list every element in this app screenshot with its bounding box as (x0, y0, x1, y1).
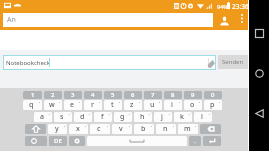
staticText: o (190, 100, 195, 110)
button[interactable]: u (144, 100, 162, 110)
staticText: y (55, 124, 59, 134)
staticText: d (80, 112, 85, 122)
staticText: m (184, 124, 191, 134)
button[interactable]: f (94, 112, 112, 122)
button[interactable]: o (184, 100, 202, 110)
button[interactable]: c (90, 124, 110, 134)
staticText: w (49, 100, 55, 110)
button[interactable]: s (54, 112, 72, 122)
button[interactable]: r (84, 100, 102, 110)
button[interactable]: Attach (207, 59, 215, 67)
button[interactable]: z (124, 100, 142, 110)
button[interactable]: Shift (25, 124, 46, 134)
button[interactable]: q (23, 100, 42, 110)
button[interactable]: 4 (84, 91, 102, 99)
staticText: 6 (131, 91, 135, 99)
staticText: l (201, 112, 203, 122)
button[interactable]: An (3, 13, 213, 27)
staticText: s (60, 112, 64, 122)
staticText: k (180, 112, 184, 122)
staticText: 7 (151, 91, 155, 99)
staticText: t (111, 100, 114, 110)
staticText: 8 (171, 91, 175, 99)
staticText: 2 (51, 91, 55, 99)
button[interactable]: i (164, 100, 182, 110)
button[interactable]: Back (251, 105, 268, 122)
staticText: i (171, 100, 173, 110)
button[interactable]: 7 (144, 91, 162, 99)
button[interactable]: e (64, 100, 82, 110)
button[interactable]: DE (49, 136, 67, 146)
staticText: . (194, 137, 196, 145)
button[interactable]: 3 (64, 91, 82, 99)
staticText: Notebookcheck (6, 59, 50, 67)
staticText: n (163, 124, 168, 134)
staticText: h (140, 112, 145, 122)
button[interactable]: d (74, 112, 92, 122)
button[interactable]: t (104, 100, 122, 110)
staticText: 23:36 (232, 2, 249, 11)
staticText: 1 (31, 91, 35, 99)
button[interactable]: Senden (218, 55, 248, 69)
button[interactable]: x (69, 124, 88, 134)
button[interactable]: Recents (251, 25, 268, 42)
button[interactable]: 0 (204, 91, 222, 99)
staticText: z (130, 100, 134, 110)
staticText: 4 (91, 91, 95, 99)
button[interactable]: 9 (184, 91, 202, 99)
button[interactable]: Symbols (25, 136, 47, 146)
button[interactable]: Enter (203, 136, 221, 146)
button[interactable]: v (112, 124, 132, 134)
staticText: 5 (111, 91, 115, 99)
button[interactable]: 6 (124, 91, 142, 99)
button[interactable]: Notebookcheck (3, 55, 216, 70)
button[interactable]: More options (234, 11, 249, 26)
staticText: j (161, 112, 163, 122)
button[interactable]: n (156, 124, 176, 134)
button[interactable]: k (174, 112, 192, 122)
staticText: 3 (71, 91, 75, 99)
staticText: r (91, 100, 94, 110)
button[interactable]: Backspace (200, 124, 221, 134)
staticText: q (29, 100, 34, 110)
staticText: g (120, 112, 125, 122)
staticText: e (70, 100, 75, 110)
staticText: u (150, 100, 155, 110)
button[interactable]: 8 (164, 91, 182, 99)
button[interactable]: h (134, 112, 152, 122)
staticText: a (40, 112, 45, 122)
staticText: An (7, 15, 16, 25)
button[interactable]: p (204, 100, 222, 110)
staticText: 94% (217, 3, 228, 10)
staticText: p (210, 100, 215, 110)
button[interactable]: 5 (104, 91, 122, 99)
staticText: f (101, 112, 104, 122)
button[interactable]: Settings (69, 136, 85, 146)
staticText: 9 (191, 91, 195, 99)
button[interactable]: Home (251, 65, 268, 82)
button[interactable]: 1 (23, 91, 42, 99)
button[interactable]: w (44, 100, 62, 110)
staticText: 0 (211, 91, 215, 99)
button[interactable]: y (48, 124, 67, 134)
button[interactable]: Choose contact (215, 11, 234, 30)
staticText: x (76, 124, 80, 134)
button[interactable]: b (134, 124, 154, 134)
staticText: c (97, 124, 101, 134)
staticText: DE (54, 137, 62, 145)
button[interactable]: l (194, 112, 212, 122)
button[interactable]: . (189, 136, 201, 146)
staticText: Senden (222, 58, 244, 66)
button[interactable]: Space (87, 136, 187, 146)
button[interactable]: j (154, 112, 172, 122)
staticText: b (141, 124, 146, 134)
button[interactable]: a (34, 112, 52, 122)
button[interactable]: g (114, 112, 132, 122)
staticText: v (119, 124, 123, 134)
button[interactable]: 2 (44, 91, 62, 99)
button[interactable]: m (178, 124, 198, 134)
